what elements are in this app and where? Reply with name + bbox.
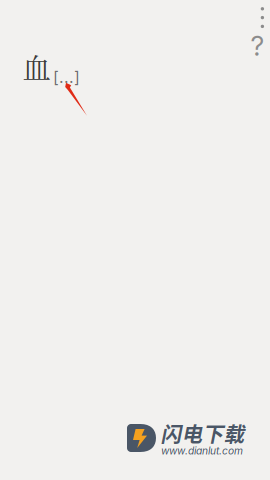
button[interactable]: More options <box>254 0 270 35</box>
staticText: [...] <box>53 67 80 87</box>
staticText: 闪电下载 <box>160 418 244 448</box>
staticText: ? <box>250 30 264 62</box>
button[interactable]: [...] <box>53 67 80 87</box>
staticText: www.dianlut.com <box>161 444 243 457</box>
staticText: 血 <box>22 46 50 87</box>
button[interactable]: Help <box>250 30 264 62</box>
